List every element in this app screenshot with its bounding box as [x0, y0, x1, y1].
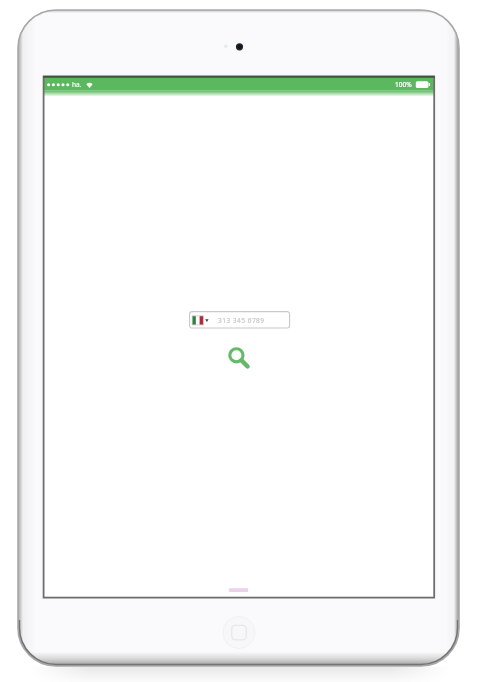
staticText: 313 345 6789: [218, 316, 265, 325]
button[interactable]: [222, 615, 256, 649]
button[interactable]: [189, 311, 290, 329]
staticText: ha.: [72, 80, 82, 89]
staticText: 100%: [395, 80, 412, 89]
button[interactable]: [224, 341, 252, 369]
